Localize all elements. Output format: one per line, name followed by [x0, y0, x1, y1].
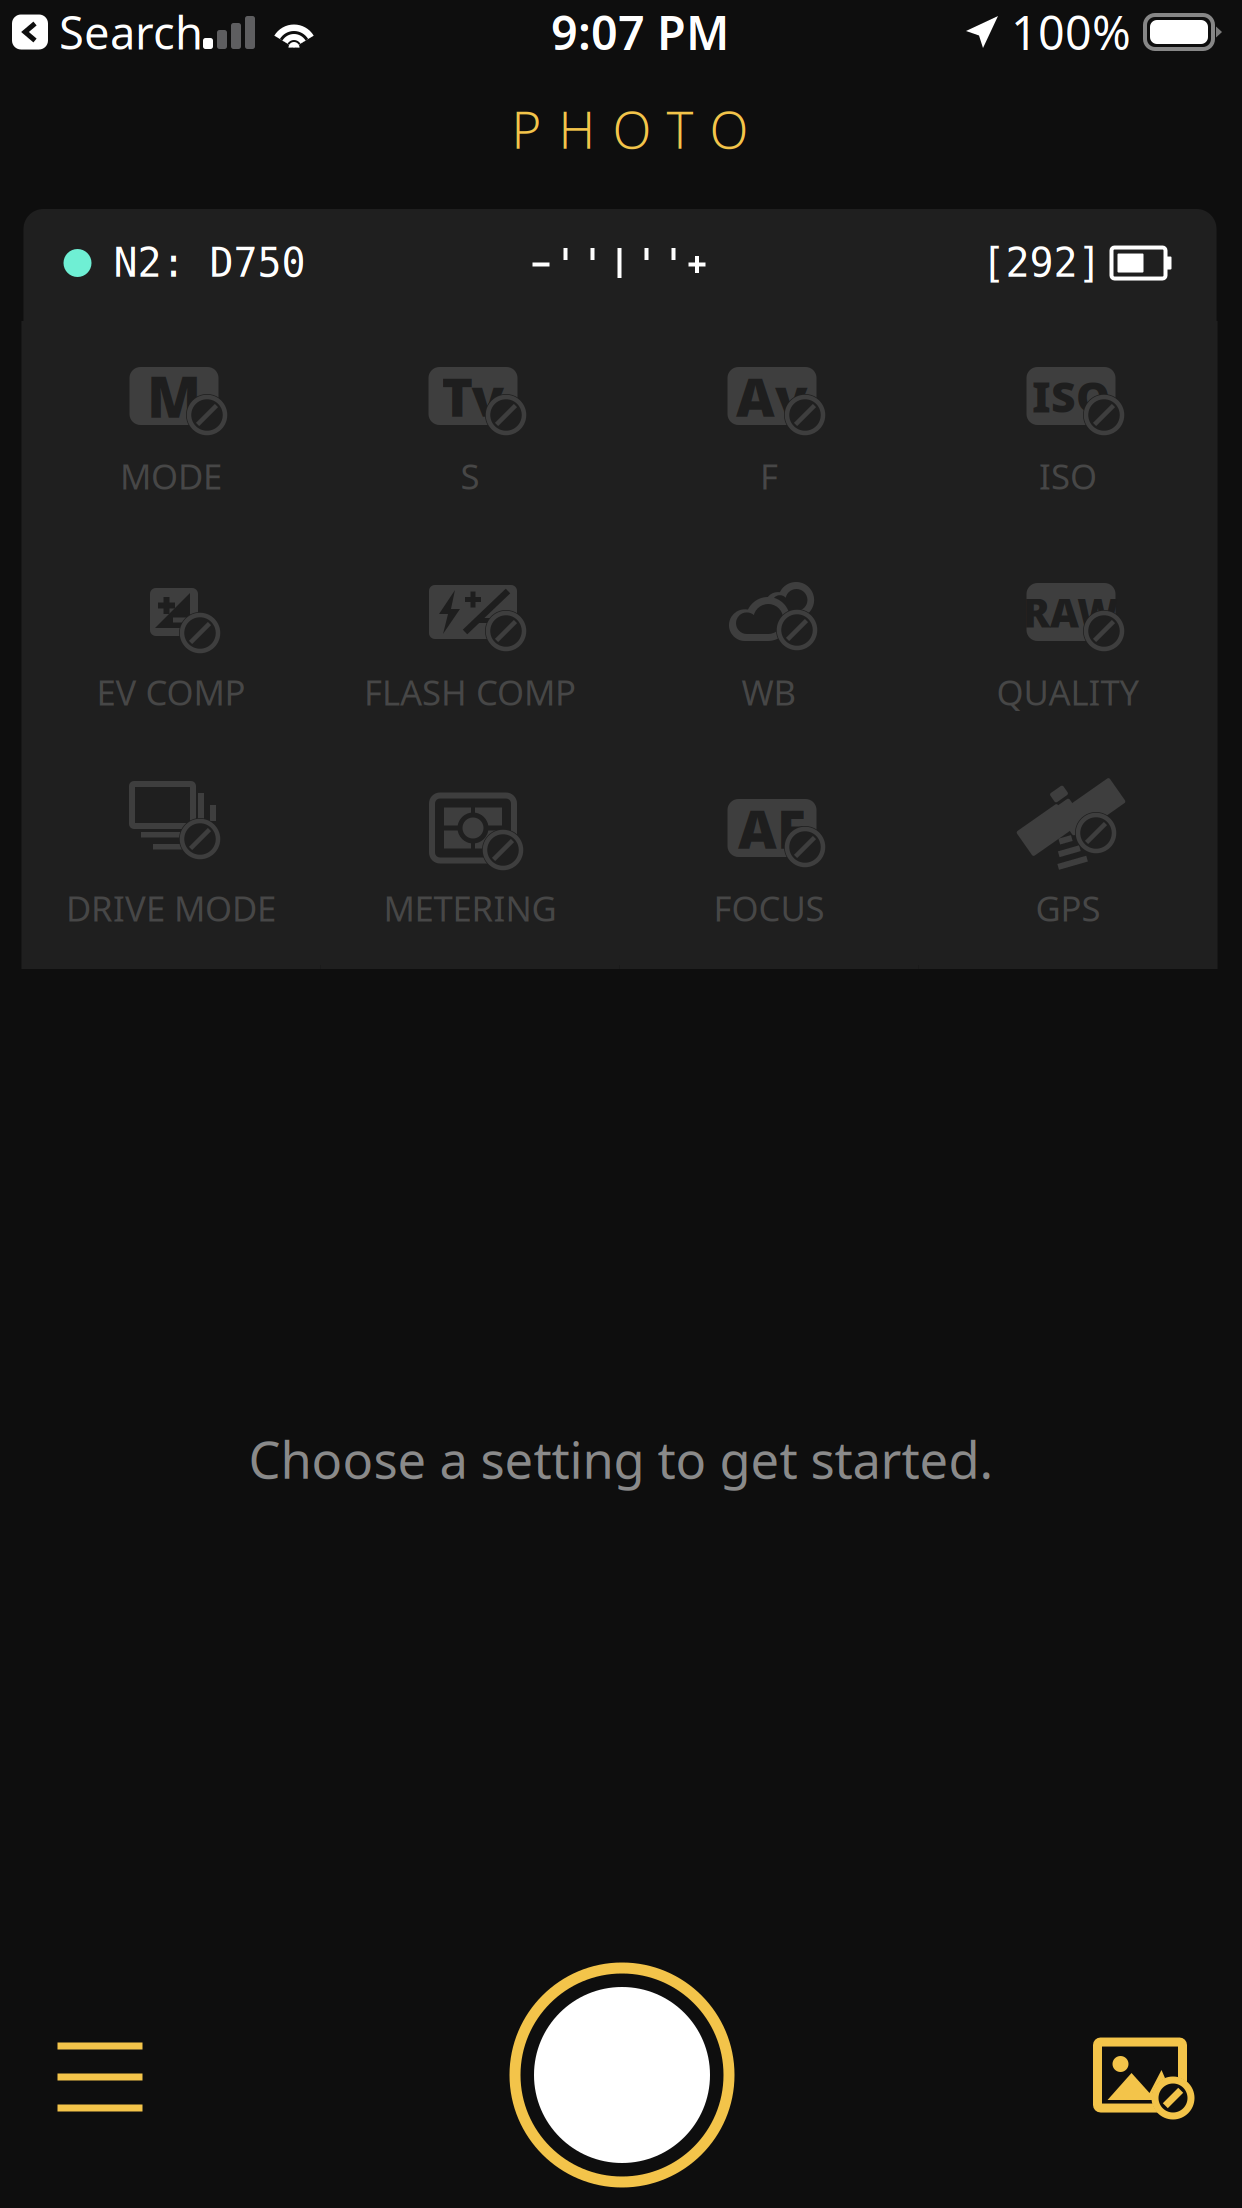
button[interactable]: Shutter [502, 1955, 742, 2195]
button[interactable]: DRIVE MODE [21, 753, 320, 969]
staticText: EV COMP [96, 669, 245, 715]
button[interactable]: METERING [320, 753, 619, 969]
staticText: S [460, 453, 479, 499]
staticText: FLASH COMP [364, 669, 576, 715]
button[interactable]: ISO [918, 321, 1217, 537]
button[interactable]: RAW [918, 537, 1217, 753]
button[interactable]: Menu [20, 1997, 180, 2157]
button[interactable]: Gallery unavailable [1060, 1995, 1220, 2155]
staticText: Av [736, 361, 808, 431]
staticText: WB [741, 669, 796, 715]
staticText: QUALITY [996, 669, 1139, 715]
button[interactable]: M [21, 321, 320, 537]
staticText: M [147, 359, 201, 433]
button[interactable]: GPS [918, 753, 1217, 969]
staticText: F [760, 453, 778, 499]
button[interactable]: AF [619, 753, 918, 969]
staticText: PHOTO [511, 95, 748, 163]
staticText: Tv [441, 361, 504, 431]
staticText: 9:07 PM [551, 1, 729, 63]
staticText: METERING [383, 885, 556, 931]
staticText: RAW [1023, 585, 1119, 638]
button[interactable]: WB [619, 537, 918, 753]
staticText: Search [59, 2, 203, 62]
staticText: [292] [981, 240, 1101, 286]
button[interactable]: EV COMP [21, 537, 320, 753]
staticText: Choose a setting to get started. [248, 1425, 993, 1493]
staticText: MODE [120, 453, 222, 499]
button[interactable]: FLASH COMP [320, 537, 619, 753]
staticText: N2: D750 [113, 240, 305, 286]
button[interactable]: Tv [320, 321, 619, 537]
staticText: DRIVE MODE [66, 885, 276, 931]
staticText: ISO [1032, 368, 1110, 424]
staticText: AF [738, 793, 806, 863]
staticText: 100% [1011, 1, 1131, 63]
staticText: FOCUS [713, 885, 824, 931]
staticText: ISO [1039, 453, 1097, 499]
button[interactable]: Back to Search [0, 0, 203, 68]
button[interactable]: Av [619, 321, 918, 537]
staticText: GPS [1035, 885, 1100, 931]
